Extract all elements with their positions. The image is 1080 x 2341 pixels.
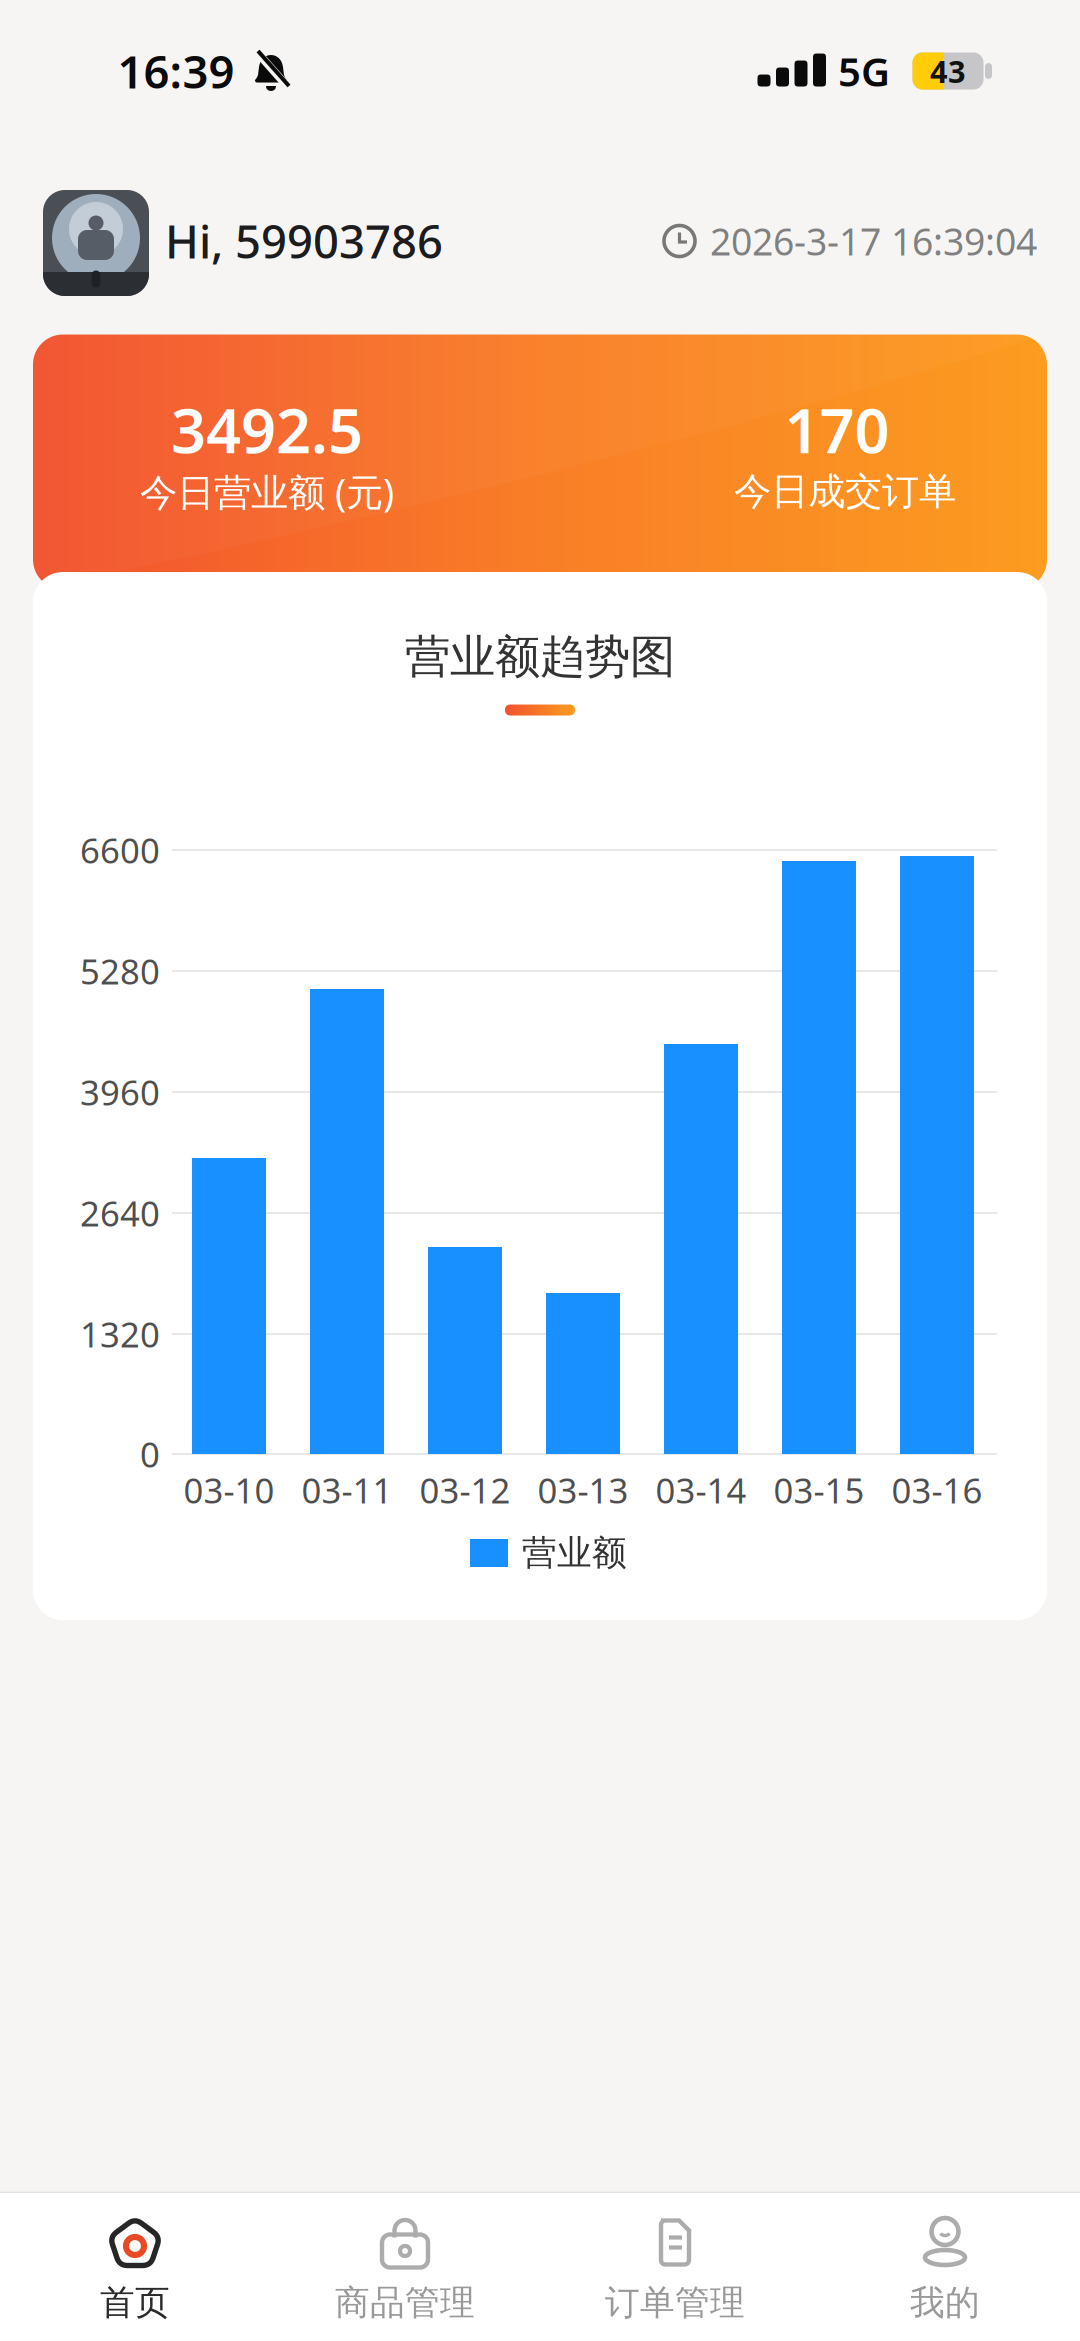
staticText: 43 [930, 51, 966, 91]
staticText: 订单管理 [605, 2281, 745, 2324]
staticText: 03-13 [537, 1467, 628, 1513]
button[interactable]: 商品管理 [270, 2217, 540, 2324]
staticText: 3960 [80, 1069, 160, 1115]
staticText: 03-10 [183, 1467, 274, 1513]
staticText: 03-15 [773, 1467, 864, 1513]
staticText: 16:39 [117, 41, 234, 101]
button[interactable]: 首页 [0, 2217, 270, 2324]
staticText: 2026-3-17 16:39:04 [710, 216, 1037, 266]
button[interactable]: 订单管理 [540, 2217, 810, 2324]
staticText: 170 [784, 389, 889, 470]
staticText: 5G [838, 44, 890, 97]
staticText: 03-14 [655, 1467, 746, 1513]
staticText: 首页 [100, 2281, 170, 2324]
staticText: 3492.5 [171, 389, 363, 470]
staticText: 1320 [80, 1311, 160, 1357]
staticText: 我的 [910, 2281, 980, 2324]
staticText: 2640 [80, 1190, 160, 1236]
staticText: 营业额 [522, 1532, 627, 1574]
staticText: 03-11 [301, 1467, 392, 1513]
staticText: 5280 [80, 948, 160, 994]
staticText: 03-12 [419, 1467, 510, 1513]
staticText: 今日成交订单 [734, 469, 956, 514]
staticText: 0 [140, 1431, 160, 1477]
staticText: 商品管理 [335, 2281, 475, 2324]
staticText: 6600 [80, 827, 160, 873]
staticText: 03-16 [891, 1467, 982, 1513]
staticText: 今日营业额 (元) [140, 467, 394, 516]
staticText: Hi, 59903786 [165, 211, 443, 271]
staticText: 营业额趋势图 [405, 629, 675, 685]
button[interactable]: 我的 [810, 2217, 1080, 2324]
